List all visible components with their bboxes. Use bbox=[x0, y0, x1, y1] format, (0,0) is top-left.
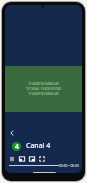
staticText: TV ABIERTA PARAGUAY TV CANAL PUEDES ESTA… bbox=[26, 82, 61, 96]
button[interactable]: 4 bbox=[12, 141, 82, 151]
button[interactable]: Picture in picture bbox=[27, 154, 37, 163]
button[interactable]: Back bbox=[6, 127, 17, 138]
button[interactable]: Pause bbox=[7, 154, 17, 163]
staticText: 00:00 • 00:00 bbox=[59, 163, 79, 167]
button[interactable]: Fullscreen bbox=[37, 154, 47, 163]
button[interactable]: Cast to device bbox=[17, 154, 27, 163]
staticText: Canal 4 bbox=[26, 141, 51, 151]
staticText: 4 bbox=[15, 142, 19, 151]
